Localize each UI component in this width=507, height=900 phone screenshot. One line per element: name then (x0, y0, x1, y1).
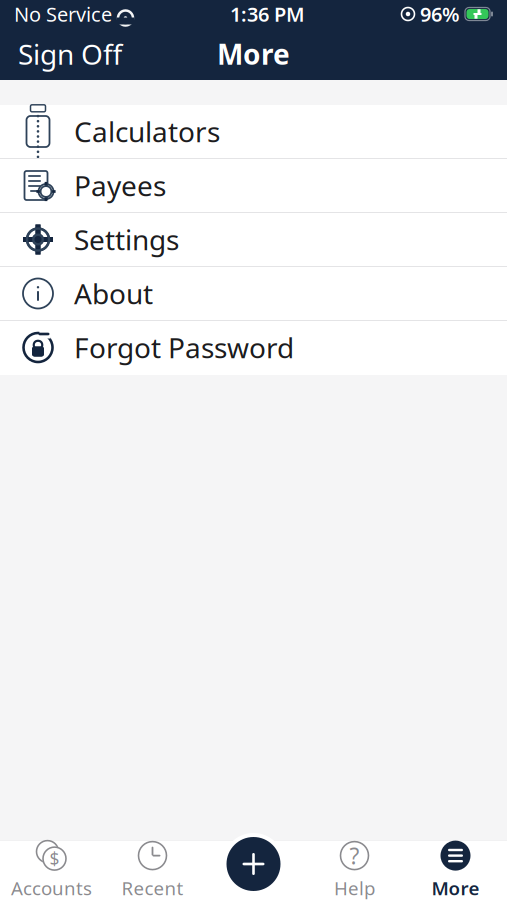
staticText: More (431, 876, 479, 900)
staticText: ? (349, 841, 359, 871)
staticText: No Service (14, 1, 112, 27)
button[interactable]: Sign Off (0, 27, 140, 81)
staticText: Sign Off (18, 35, 122, 73)
staticText: 96% (420, 1, 460, 27)
staticText: More (217, 35, 290, 73)
button[interactable]: About (0, 267, 507, 321)
staticText: Payees (74, 167, 166, 204)
button[interactable]: $ (1, 840, 102, 900)
button[interactable]: Add (203, 833, 304, 895)
staticText: Help (334, 876, 375, 900)
button[interactable]: Recent (102, 840, 203, 900)
button[interactable]: Forgot Password (0, 321, 507, 375)
button[interactable]: Settings (0, 213, 507, 267)
staticText: Calculators (74, 113, 220, 150)
staticText: Settings (74, 221, 179, 258)
staticText: About (74, 275, 153, 312)
button[interactable]: ? (304, 840, 405, 900)
button[interactable]: Calculators (0, 105, 507, 159)
button[interactable]: More (405, 840, 506, 900)
staticText: $ (49, 847, 59, 870)
button[interactable]: Payees (0, 159, 507, 213)
staticText: Recent (121, 876, 183, 900)
staticText: 1:36 PM (230, 1, 305, 27)
staticText: Accounts (11, 876, 92, 900)
staticText: Forgot Password (74, 329, 294, 366)
